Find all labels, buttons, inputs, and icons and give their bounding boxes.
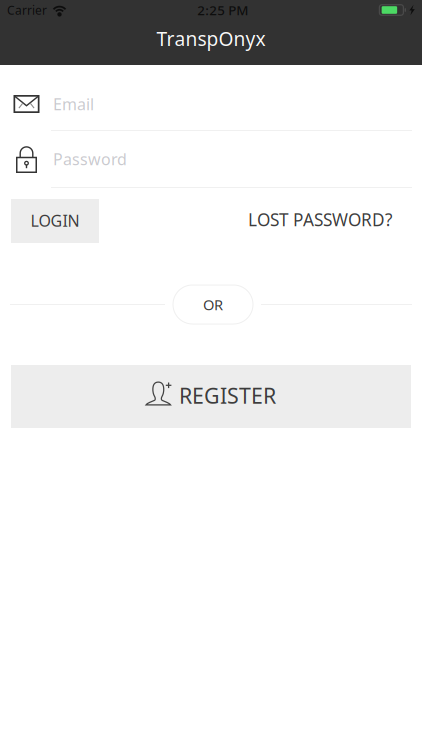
staticText: OR	[203, 295, 223, 314]
staticText: TranspOnyx	[156, 25, 265, 52]
staticText: LOST PASSWORD?	[248, 208, 392, 231]
button[interactable]: LOST PASSWORD?	[240, 199, 400, 243]
staticText: Password	[53, 148, 127, 170]
button[interactable]: LOGIN	[11, 199, 99, 243]
staticText: Email	[53, 93, 94, 115]
staticText: Carrier	[7, 2, 47, 18]
staticText: LOGIN	[30, 210, 79, 231]
staticText: 2:25 PM	[197, 1, 248, 19]
button[interactable]: REGISTER	[11, 365, 411, 428]
staticText: REGISTER	[179, 381, 276, 410]
